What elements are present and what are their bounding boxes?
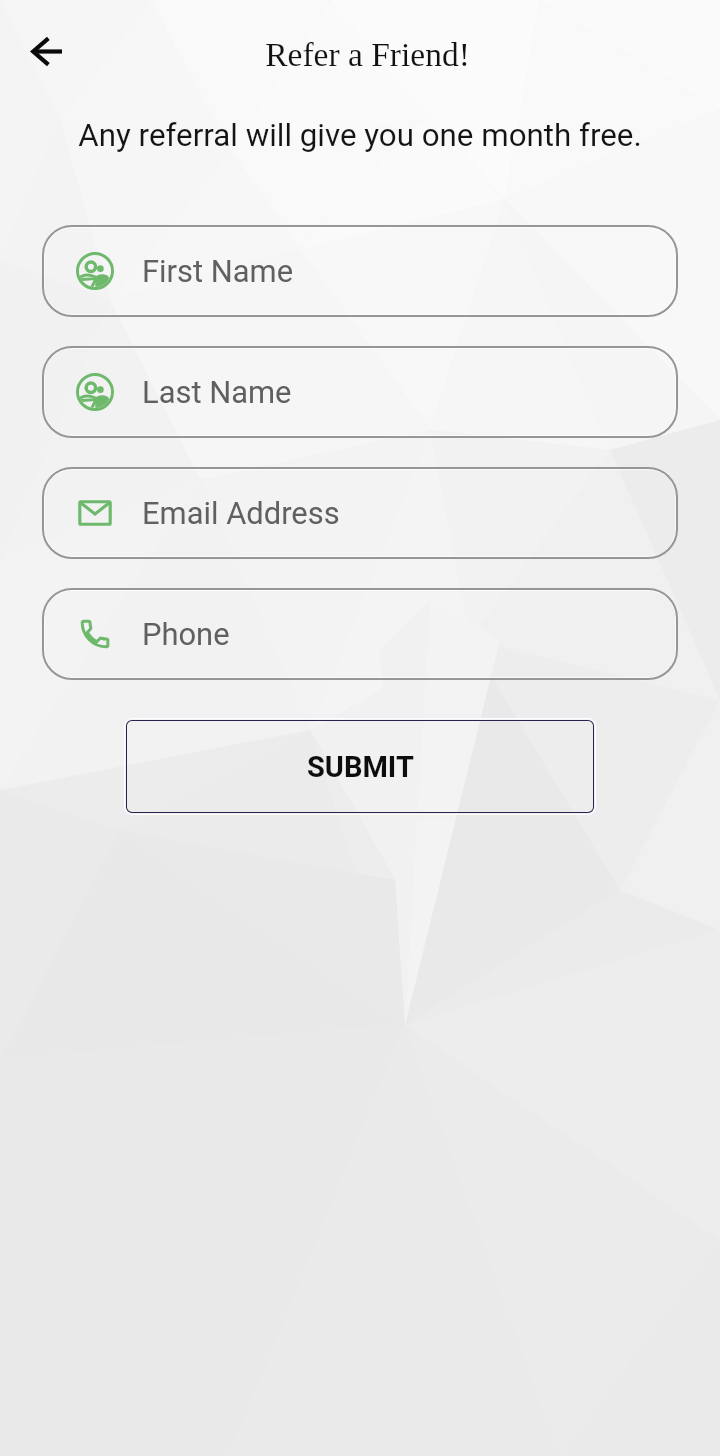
- staticText: Any referral will give you one month fre…: [0, 117, 720, 154]
- staticText: Last Name: [142, 374, 292, 410]
- staticText: First Name: [142, 253, 294, 289]
- staticText: Refer a Friend!: [15, 36, 720, 73]
- button[interactable]: Back: [16, 21, 76, 81]
- button[interactable]: Last Name: [43, 347, 677, 437]
- staticText: SUBMIT: [307, 750, 414, 784]
- button[interactable]: Email Address: [43, 468, 677, 558]
- staticText: Email Address: [142, 495, 340, 531]
- button[interactable]: SUBMIT: [125, 719, 595, 814]
- button[interactable]: First Name: [43, 226, 677, 316]
- staticText: Phone: [142, 616, 230, 652]
- button[interactable]: Phone: [43, 589, 677, 679]
